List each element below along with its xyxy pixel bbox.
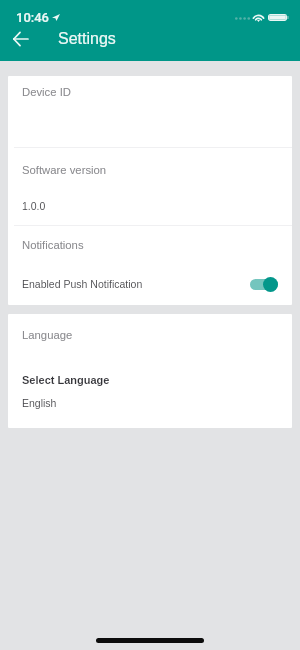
staticText: 1.0.0 bbox=[22, 200, 46, 212]
button[interactable]: Select Language bbox=[22, 374, 278, 409]
staticText: 10:46 bbox=[16, 10, 50, 25]
staticText: Software version bbox=[22, 164, 107, 177]
staticText: English bbox=[22, 397, 57, 409]
button[interactable]: Enabled Push Notification toggle bbox=[250, 274, 278, 294]
staticText: Settings bbox=[58, 30, 116, 48]
staticText: Device ID bbox=[22, 86, 71, 99]
staticText: Language bbox=[22, 329, 73, 342]
button[interactable]: Enabled Push Notification bbox=[22, 278, 278, 298]
staticText: Select Language bbox=[22, 374, 110, 386]
staticText: Enabled Push Notification bbox=[22, 278, 143, 290]
button[interactable]: Device ID bbox=[22, 86, 278, 99]
button[interactable]: Back bbox=[6, 25, 34, 53]
button[interactable]: 1.0.0 bbox=[22, 200, 278, 212]
staticText: Notifications bbox=[22, 239, 84, 252]
